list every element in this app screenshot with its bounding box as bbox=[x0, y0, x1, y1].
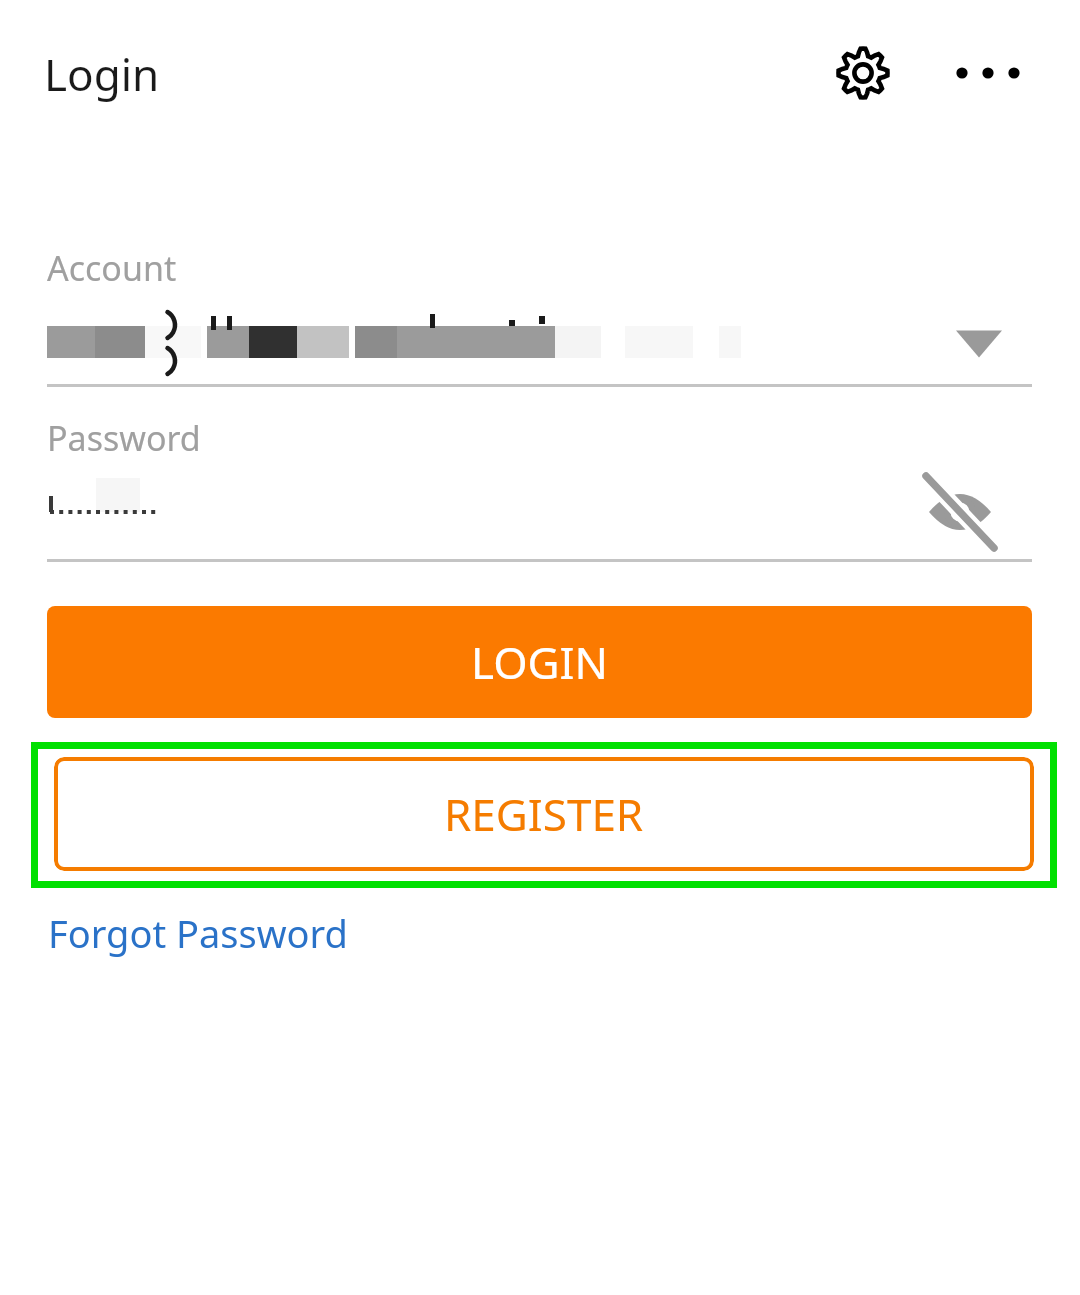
staticText: Forgot Password bbox=[48, 907, 348, 959]
button[interactable]: More options bbox=[945, 38, 1031, 108]
button[interactable]: Settings bbox=[825, 35, 901, 111]
staticText: Account bbox=[47, 245, 177, 291]
button[interactable]: LOGIN bbox=[47, 606, 1032, 718]
staticText: Login bbox=[44, 44, 160, 104]
button[interactable]: Select account bbox=[912, 300, 1022, 384]
staticText: REGISTER bbox=[444, 784, 644, 844]
button[interactable]: Toggle password visibility bbox=[905, 462, 1015, 562]
button[interactable]: Forgot Password bbox=[40, 903, 356, 963]
staticText: LOGIN bbox=[471, 632, 608, 692]
staticText: Password bbox=[47, 415, 201, 461]
button[interactable]: REGISTER bbox=[54, 757, 1034, 871]
